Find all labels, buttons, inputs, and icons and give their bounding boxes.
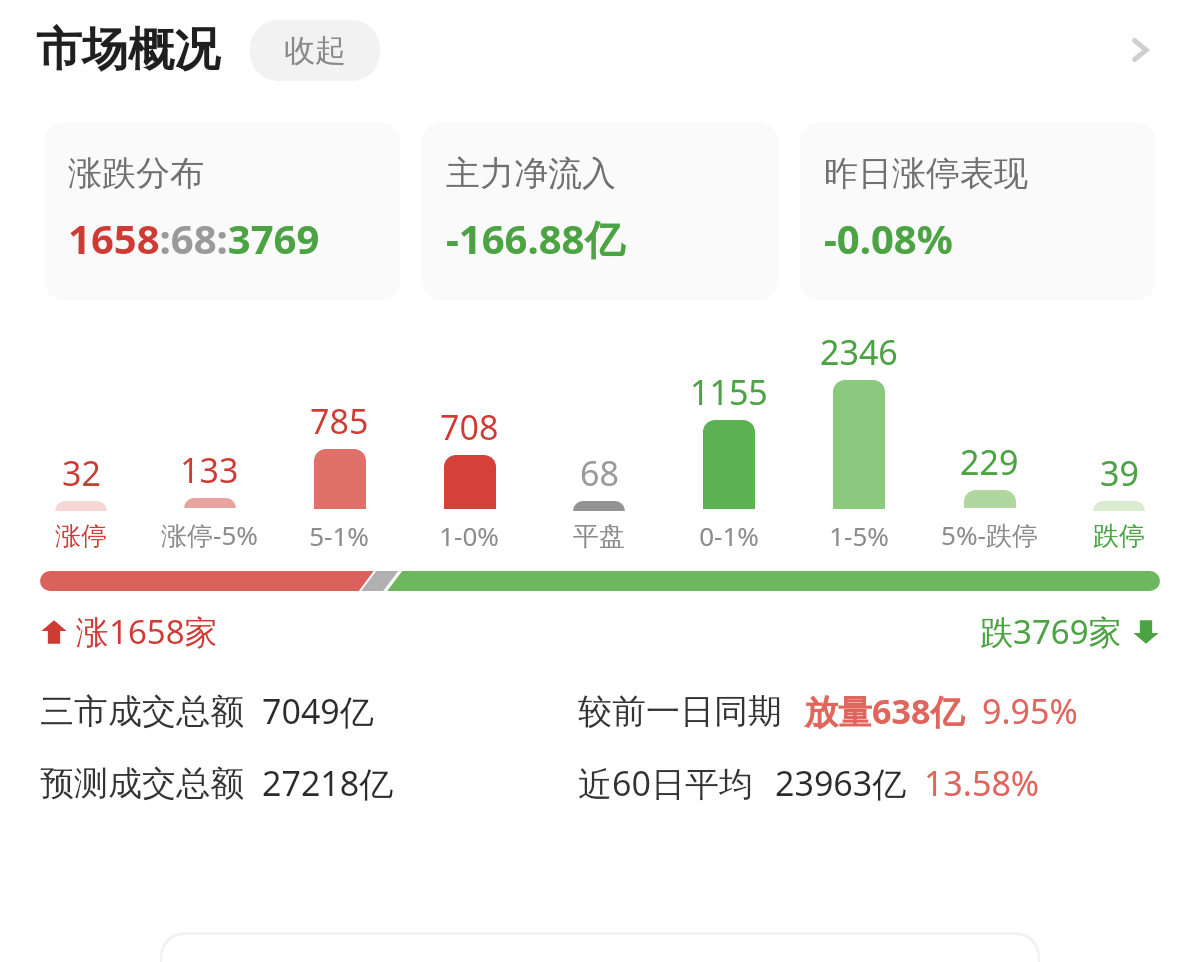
button[interactable]: 229 — [924, 328, 1054, 553]
staticText: 平盘 — [573, 520, 625, 553]
staticText: 昨日涨停表现 — [824, 152, 1028, 195]
button[interactable]: 708 — [404, 329, 534, 553]
staticText: 涨跌分布 — [68, 152, 204, 195]
staticText: 跌3769家 — [980, 609, 1122, 654]
staticText: 32 — [62, 450, 101, 496]
staticText: 2346 — [820, 329, 898, 375]
staticText: 收起 — [284, 31, 346, 70]
button[interactable]: 32 — [16, 331, 145, 553]
staticText: 68 — [580, 450, 619, 496]
button[interactable]: 主力净流入 — [422, 122, 778, 300]
button[interactable]: 收起 — [250, 20, 380, 81]
staticText: 三市成交总额 — [40, 690, 244, 733]
staticText: 133 — [180, 447, 239, 493]
button[interactable]: 1155 — [664, 329, 794, 553]
staticText: 39 — [1100, 450, 1139, 496]
staticText: 1155 — [690, 369, 768, 415]
staticText: 1658:68:3769 — [68, 211, 320, 265]
staticText: 涨1658家 — [76, 609, 218, 654]
button[interactable]: 39 — [1054, 331, 1184, 553]
staticText: 5-1% — [309, 518, 369, 553]
staticText: 27218亿 — [262, 760, 394, 806]
staticText: 1-0% — [439, 518, 499, 553]
staticText: 785 — [310, 398, 369, 444]
button[interactable]: 昨日涨停表现 — [800, 122, 1156, 300]
staticText: 跌停 — [1093, 520, 1145, 553]
staticText: 市场概况 — [36, 21, 220, 79]
staticText: 涨停-5% — [161, 517, 258, 553]
staticText: 较前一日同期 — [578, 690, 782, 733]
staticText: 主力净流入 — [446, 152, 616, 195]
staticText: 放量638亿 9.95% — [804, 688, 1078, 734]
staticText: -0.08% — [824, 211, 953, 265]
staticText: 229 — [960, 439, 1019, 485]
button[interactable]: 785 — [274, 329, 404, 553]
staticText: 1-5% — [829, 518, 889, 553]
staticText: -166.88亿 — [446, 211, 625, 266]
button[interactable]: 68 — [534, 331, 664, 553]
staticText: 涨停 — [55, 520, 107, 553]
staticText: 预测成交总额 — [40, 762, 244, 805]
button[interactable]: 133 — [145, 328, 274, 553]
staticText: 708 — [440, 404, 499, 450]
staticText: 近60日平均 — [578, 760, 753, 806]
staticText: 5%-跌停 — [941, 517, 1038, 553]
staticText: 7049亿 — [262, 688, 374, 734]
button[interactable]: 2346 — [794, 329, 924, 553]
staticText: 0-1% — [699, 518, 759, 553]
button[interactable]: 涨跌分布 — [44, 122, 400, 300]
button[interactable]: More — [1110, 20, 1170, 80]
staticText: 23963亿 13.58% — [775, 760, 1040, 806]
